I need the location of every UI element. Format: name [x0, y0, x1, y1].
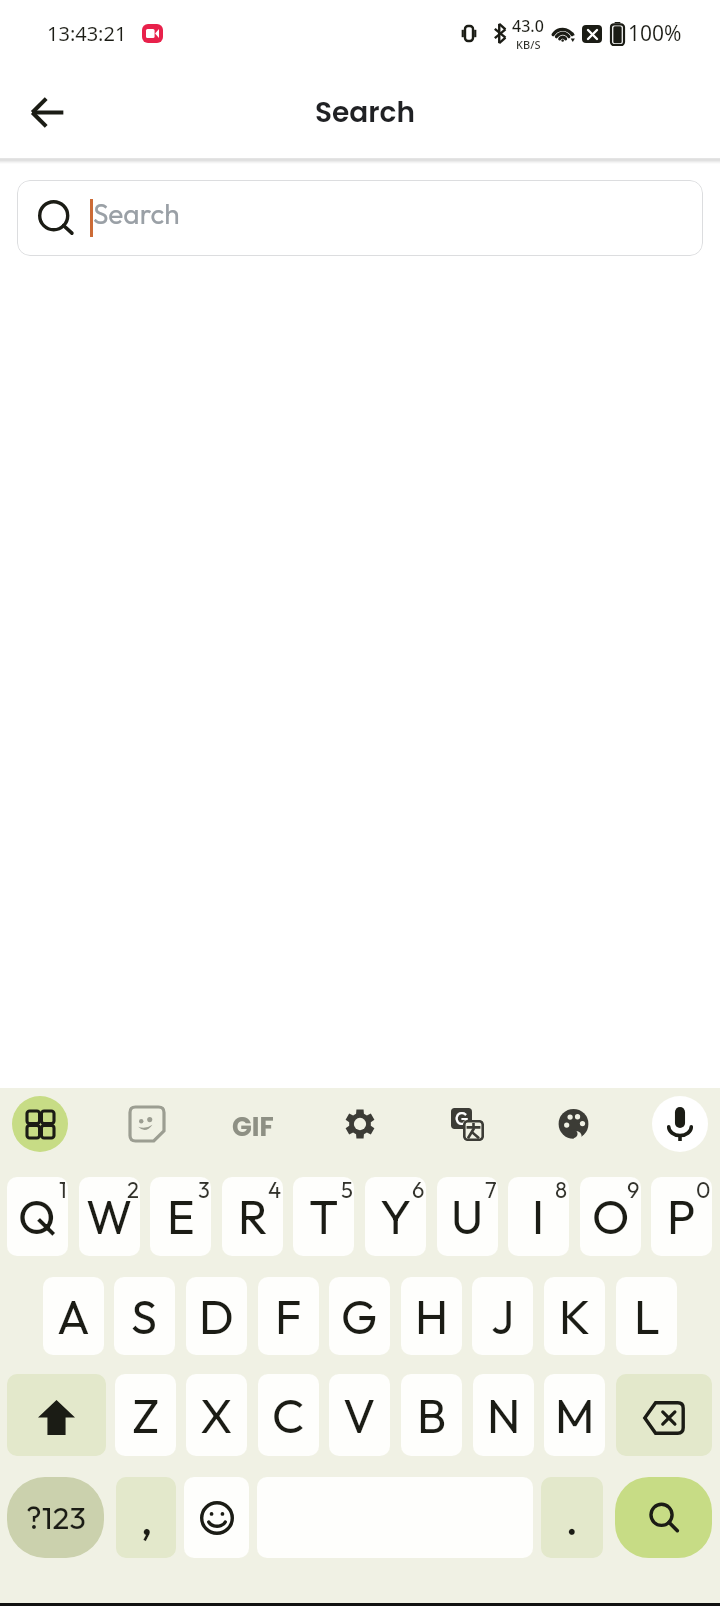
staticText: A	[57, 1287, 90, 1346]
button[interactable]: Z	[115, 1374, 176, 1456]
staticText: D	[199, 1287, 234, 1346]
staticText: 6	[412, 1177, 425, 1204]
button[interactable]: O	[580, 1177, 641, 1256]
button[interactable]: B	[401, 1374, 462, 1456]
staticText: R	[238, 1187, 268, 1246]
staticText: W	[86, 1187, 133, 1246]
button[interactable]: Symbols keyboard	[12, 1096, 68, 1152]
staticText: S	[131, 1287, 158, 1346]
staticText: 13:43:21	[47, 20, 127, 47]
button[interactable]: Y	[365, 1177, 426, 1256]
button[interactable]: .	[541, 1477, 603, 1558]
staticText: B	[417, 1386, 447, 1445]
button[interactable]: Search	[615, 1477, 712, 1558]
staticText: ?123	[26, 1498, 86, 1537]
button[interactable]: Stickers	[119, 1096, 175, 1152]
staticText: KB/S	[516, 37, 541, 52]
staticText: G	[341, 1287, 378, 1346]
staticText: Search	[93, 196, 180, 231]
staticText: Search	[315, 93, 415, 132]
staticText: 7	[485, 1177, 497, 1204]
button[interactable]: Translate	[439, 1096, 495, 1152]
button[interactable]: C	[258, 1374, 319, 1456]
button[interactable]: M	[544, 1374, 605, 1456]
staticText: F	[275, 1287, 302, 1346]
staticText: T	[309, 1187, 339, 1246]
staticText: L	[634, 1287, 660, 1346]
button[interactable]: P	[651, 1177, 712, 1256]
button[interactable]: Voice input	[652, 1096, 708, 1152]
button[interactable]: J	[472, 1277, 533, 1355]
staticText: 2	[127, 1177, 139, 1204]
staticText: G	[455, 1108, 469, 1129]
button[interactable]: Shift	[7, 1374, 106, 1456]
button[interactable]: H	[401, 1277, 462, 1355]
button[interactable]: G	[329, 1277, 390, 1355]
staticText: X	[200, 1386, 233, 1445]
button[interactable]: S	[114, 1277, 175, 1355]
button[interactable]: GIF	[225, 1096, 281, 1152]
button[interactable]: R	[222, 1177, 283, 1256]
button[interactable]: Themes	[545, 1096, 601, 1152]
staticText: O	[592, 1187, 630, 1246]
button[interactable]: E	[150, 1177, 211, 1256]
button[interactable]: Back	[14, 79, 80, 145]
button[interactable]: I	[508, 1177, 569, 1256]
staticText: E	[167, 1187, 195, 1246]
staticText: N	[487, 1386, 521, 1445]
staticText: 9	[627, 1177, 640, 1204]
button[interactable]: Emoji	[184, 1477, 249, 1558]
button[interactable]: U	[437, 1177, 498, 1256]
staticText: C	[272, 1386, 305, 1445]
button[interactable]: ?123	[7, 1477, 104, 1558]
button[interactable]: Backspace	[616, 1374, 712, 1456]
staticText: I	[532, 1187, 545, 1246]
staticText: U	[451, 1187, 484, 1246]
staticText: K	[559, 1287, 591, 1346]
button[interactable]: Settings	[332, 1096, 388, 1152]
staticText: 4	[268, 1177, 282, 1204]
button[interactable]: F	[258, 1277, 319, 1355]
button[interactable]: W	[79, 1177, 140, 1256]
button[interactable]: K	[544, 1277, 605, 1355]
button[interactable]: L	[616, 1277, 677, 1355]
button[interactable]: D	[186, 1277, 247, 1355]
staticText: 3	[198, 1177, 210, 1204]
button[interactable]: Q	[7, 1177, 68, 1256]
staticText: H	[415, 1287, 449, 1346]
button[interactable]: X	[186, 1374, 247, 1456]
staticText: 43.0	[512, 15, 544, 37]
staticText: P	[667, 1187, 696, 1246]
staticText: GIF	[232, 1109, 274, 1145]
button[interactable]: A	[43, 1277, 104, 1355]
button[interactable]: N	[473, 1374, 534, 1456]
button[interactable]: ,	[116, 1477, 176, 1558]
staticText: V	[343, 1386, 376, 1445]
button[interactable]: Search	[17, 180, 703, 256]
staticText: Q	[18, 1187, 57, 1246]
staticText: M	[555, 1386, 595, 1445]
staticText: ,	[140, 1488, 153, 1547]
button[interactable]: T	[293, 1177, 354, 1256]
staticText: 1	[59, 1177, 67, 1204]
button[interactable]: V	[329, 1374, 390, 1456]
staticText: 8	[555, 1177, 568, 1204]
staticText: J	[491, 1287, 515, 1346]
staticText: .	[565, 1488, 579, 1547]
staticText: 100%	[628, 19, 682, 48]
staticText: 5	[341, 1177, 353, 1204]
staticText: Y	[380, 1187, 412, 1246]
staticText: 0	[696, 1177, 711, 1204]
staticText: Z	[132, 1386, 160, 1445]
